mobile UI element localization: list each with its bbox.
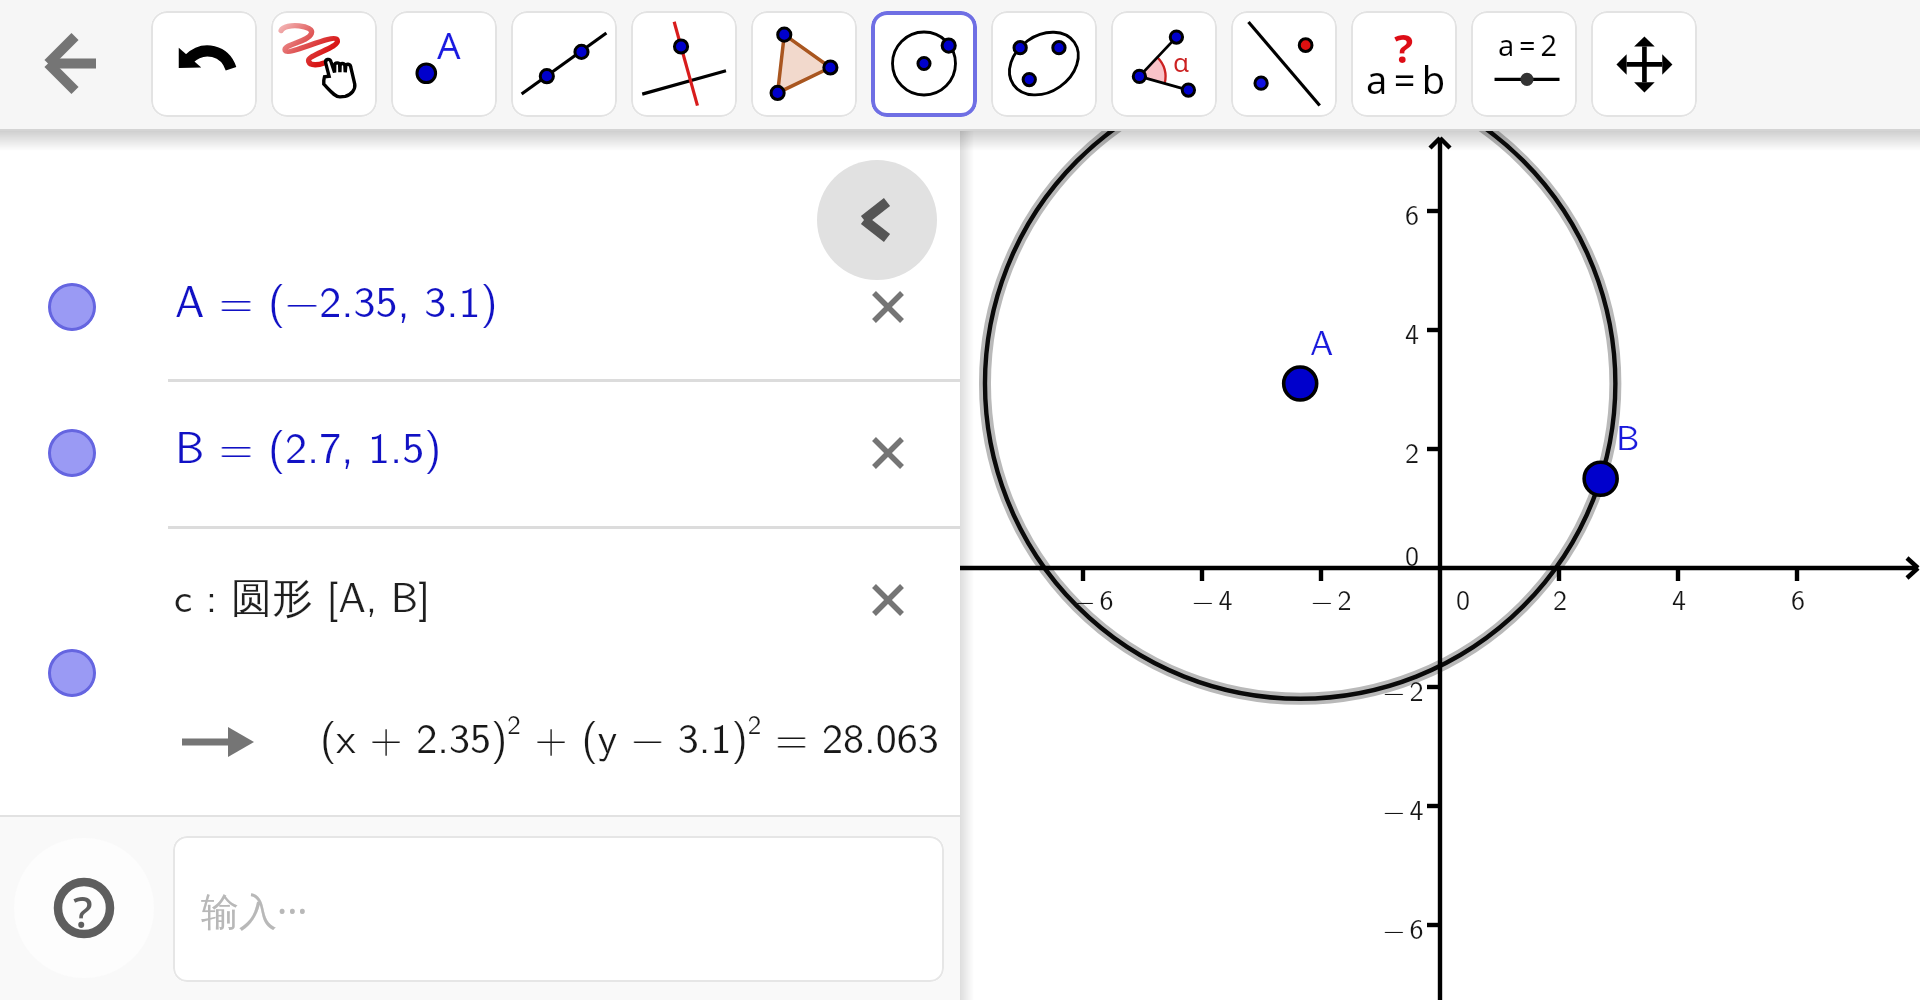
staticText: − 2 bbox=[1311, 578, 1352, 619]
button[interactable]: Back bbox=[32, 30, 100, 98]
staticText: − 2 bbox=[1383, 669, 1424, 710]
staticText: 输入··· bbox=[201, 884, 308, 936]
button[interactable]: Relation bbox=[1351, 11, 1457, 117]
staticText: 4 bbox=[1405, 312, 1420, 353]
button[interactable]: Move bbox=[1591, 11, 1697, 117]
button[interactable]: Point bbox=[391, 11, 497, 117]
staticText: − 6 bbox=[1383, 907, 1424, 948]
staticText: − 4 bbox=[1192, 578, 1233, 619]
staticText: A bbox=[437, 19, 461, 69]
staticText: 2 bbox=[1405, 431, 1420, 472]
staticText: 4 bbox=[1672, 578, 1687, 619]
button[interactable]: Circle with centre through point bbox=[871, 11, 977, 117]
staticText: A bbox=[1310, 315, 1334, 366]
button[interactable]: Conic through 5 points bbox=[991, 11, 1097, 117]
button[interactable]: Delete bbox=[866, 285, 910, 329]
staticText: − 4 bbox=[1383, 788, 1424, 829]
staticText: 6 bbox=[1791, 578, 1806, 619]
staticText: 6 bbox=[1405, 193, 1420, 234]
button[interactable]: Toggle visibility bbox=[48, 283, 96, 331]
button[interactable]: Delete bbox=[866, 578, 910, 622]
button[interactable]: Toggle visibility bbox=[48, 429, 96, 477]
button[interactable]: Undo bbox=[151, 11, 257, 117]
button[interactable]: Delete bbox=[866, 431, 910, 475]
staticText: c : 圆形 [A, B] bbox=[174, 565, 431, 625]
button[interactable]: Line bbox=[511, 11, 617, 117]
staticText: ? bbox=[1394, 20, 1414, 74]
staticText: B = (2.7, 1.5) bbox=[175, 412, 442, 476]
staticText: 0 bbox=[1456, 578, 1471, 619]
button[interactable]: Slider bbox=[1471, 11, 1577, 117]
staticText: ? bbox=[73, 881, 93, 941]
button[interactable]: Toggle visibility bbox=[48, 649, 96, 697]
staticText: − 6 bbox=[1073, 578, 1114, 619]
staticText: B bbox=[1616, 410, 1640, 461]
staticText: (x + 2.35)2 + (y − 3.1)2 = 28.063 bbox=[320, 703, 939, 766]
button[interactable]: 输入··· bbox=[173, 836, 944, 982]
staticText: 0 bbox=[1405, 534, 1420, 575]
button[interactable]: Reflect about line bbox=[1231, 11, 1337, 117]
staticText: a = b bbox=[1366, 53, 1446, 105]
button[interactable]: Perpendicular line bbox=[631, 11, 737, 117]
staticText: a = 2 bbox=[1498, 25, 1558, 64]
staticText: α bbox=[1173, 44, 1190, 79]
button[interactable]: Polygon bbox=[751, 11, 857, 117]
staticText: 2 bbox=[1553, 578, 1568, 619]
button[interactable]: Freehand shape bbox=[271, 11, 377, 117]
staticText: A = (−2.35, 3.1) bbox=[175, 266, 498, 330]
button[interactable]: Collapse panel bbox=[817, 160, 937, 280]
button[interactable]: Help bbox=[54, 878, 114, 938]
button[interactable]: Angle bbox=[1111, 11, 1217, 117]
